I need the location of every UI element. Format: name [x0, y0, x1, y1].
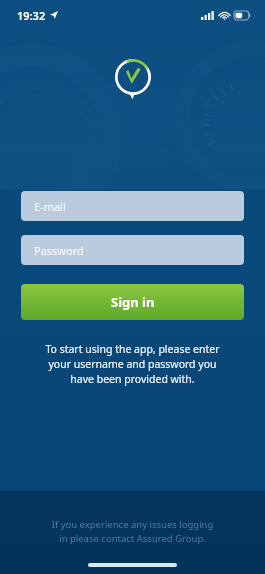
button[interactable]: Password	[21, 235, 244, 265]
button[interactable]: E-mail	[21, 191, 244, 221]
staticText: Password	[34, 243, 84, 258]
staticText: 19:32	[17, 8, 46, 23]
staticText: To start using the app, please enter you…	[21, 342, 244, 386]
staticText: E-mail	[34, 199, 66, 214]
staticText: If you experience any issues logging in …	[24, 518, 241, 545]
staticText: Sign in	[111, 293, 155, 311]
button[interactable]: Sign in	[21, 284, 244, 320]
